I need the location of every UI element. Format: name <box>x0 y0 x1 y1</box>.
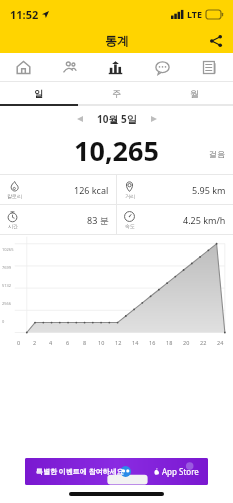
staticText: 일 <box>34 88 43 99</box>
staticText: 10 <box>98 339 105 346</box>
staticText: 0 <box>2 319 5 324</box>
button[interactable]: 주 <box>77 82 155 104</box>
staticText: 14 <box>132 339 139 346</box>
button[interactable]: Share <box>205 30 227 52</box>
staticText: 5132 <box>2 283 12 288</box>
button[interactable]: News <box>186 53 233 81</box>
staticText: 주 <box>112 88 121 99</box>
button[interactable]: 시간 <box>0 205 116 234</box>
staticText: 시간 <box>8 223 18 229</box>
staticText: 10월 5일 <box>97 112 137 126</box>
staticText: 월 <box>190 88 199 99</box>
staticText: 6 <box>66 339 70 346</box>
staticText: 22 <box>200 339 207 346</box>
staticText: 4.25 km/h <box>183 214 226 226</box>
button[interactable]: Chat <box>139 53 186 81</box>
button[interactable]: Home <box>0 53 46 81</box>
staticText: 특별한 이벤트에 참여하세요 <box>36 467 124 477</box>
button[interactable]: 일 <box>0 82 77 104</box>
staticText: 거리 <box>125 193 135 199</box>
button[interactable]: 속도 <box>117 205 233 234</box>
button[interactable]: Next day <box>145 110 163 128</box>
staticText: LTE <box>187 8 203 20</box>
staticText: 12 <box>115 339 122 346</box>
staticText: 16 <box>149 339 156 346</box>
staticText: 걸음 <box>209 149 225 159</box>
staticText: 11:52 <box>10 7 39 22</box>
button[interactable]: Friends <box>46 53 92 81</box>
staticText: 18 <box>166 339 173 346</box>
staticText: 10,265 <box>74 132 159 166</box>
button[interactable]: Previous day <box>71 110 89 128</box>
staticText: 2 <box>33 339 37 346</box>
staticText: 5.95 km <box>192 184 226 196</box>
button[interactable]: 칼로리 <box>0 175 116 204</box>
button[interactable]: 특별한 이벤트에 참여하세요 <box>25 458 208 485</box>
staticText: 속도 <box>125 223 135 229</box>
staticText: 126 kcal <box>74 184 109 196</box>
staticText: 8 <box>83 339 87 346</box>
staticText: 칼로리 <box>7 193 22 199</box>
staticText: 24 <box>217 339 224 346</box>
staticText: 20 <box>183 339 190 346</box>
staticText: 4 <box>49 339 53 346</box>
staticText: 통계 <box>105 33 129 48</box>
staticText: 0 <box>17 339 21 346</box>
button[interactable]: 거리 <box>117 175 233 204</box>
button[interactable]: Statistics <box>92 53 139 81</box>
staticText: App Store <box>162 466 199 477</box>
staticText: 2566 <box>2 301 12 306</box>
staticText: 7699 <box>2 265 12 270</box>
staticText: 83 분 <box>87 214 109 226</box>
button[interactable]: 월 <box>155 82 233 104</box>
staticText: 10265 <box>2 247 14 252</box>
